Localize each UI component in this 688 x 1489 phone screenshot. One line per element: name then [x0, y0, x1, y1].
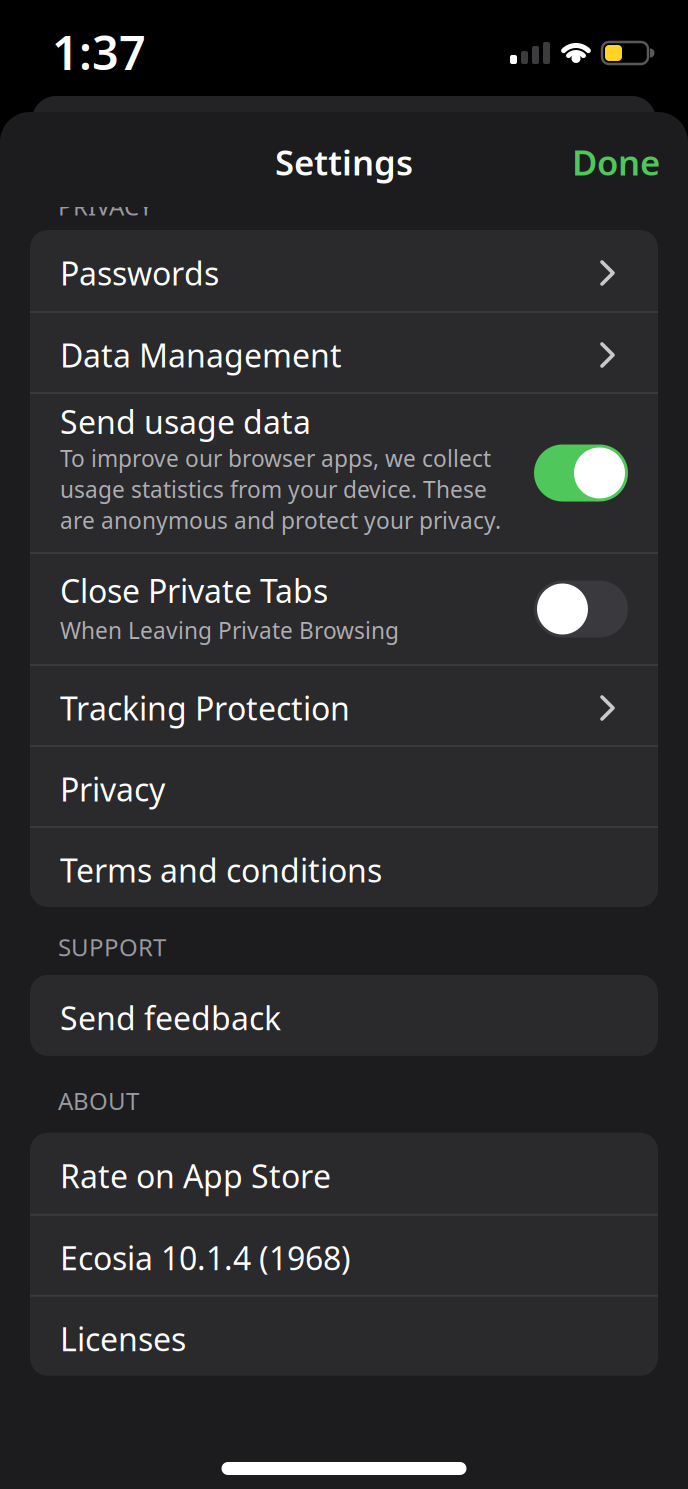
button[interactable]: Send usage data: [534, 444, 628, 501]
staticText: 1:37: [52, 21, 146, 83]
staticText: Terms and conditions: [60, 849, 382, 891]
staticText: To improve our browser apps, we collect: [60, 443, 491, 473]
staticText: Send feedback: [60, 997, 281, 1039]
button[interactable]: Privacy: [30, 747, 658, 826]
button[interactable]: Passwords: [30, 230, 658, 311]
staticText: Close Private Tabs: [60, 569, 328, 612]
staticText: Send usage data: [60, 400, 311, 443]
staticText: Done: [572, 139, 660, 185]
button[interactable]: Close Private Tabs: [534, 580, 628, 637]
button[interactable]: Send feedback: [30, 975, 658, 1056]
button[interactable]: Ecosia 10.1.4 (1968): [30, 1216, 658, 1295]
staticText: PRIVACY: [58, 190, 153, 222]
staticText: Passwords: [60, 252, 219, 294]
staticText: Privacy: [60, 768, 165, 810]
staticText: Rate on App Store: [60, 1154, 331, 1197]
staticText: When Leaving Private Browsing: [60, 615, 399, 645]
button[interactable]: Done: [572, 139, 660, 185]
staticText: Licenses: [60, 1317, 186, 1360]
staticText: ABOUT: [58, 1085, 139, 1117]
staticText: are anonymous and protect your privacy.: [60, 505, 501, 535]
button[interactable]: Licenses: [30, 1297, 658, 1376]
button[interactable]: Tracking Protection: [30, 666, 658, 745]
staticText: Tracking Protection: [60, 687, 350, 729]
staticText: Data Management: [60, 334, 342, 376]
button[interactable]: Terms and conditions: [30, 828, 658, 907]
staticText: Ecosia 10.1.4 (1968): [60, 1236, 351, 1279]
staticText: usage statistics from your device. These: [60, 474, 487, 504]
staticText: SUPPORT: [58, 931, 166, 963]
staticText: Settings: [275, 139, 413, 185]
button[interactable]: Data Management: [30, 313, 658, 392]
button[interactable]: Rate on App Store: [30, 1133, 658, 1214]
